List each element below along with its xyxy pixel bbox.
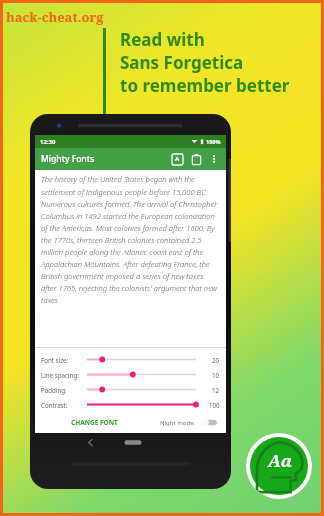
staticText: hack-cheat.org: [6, 8, 104, 26]
staticText: 12: [212, 386, 220, 394]
staticText: Line spacing:: [41, 371, 79, 379]
staticText: 100: [209, 401, 220, 409]
staticText: 100%: [206, 138, 221, 145]
staticText: 10: [212, 371, 220, 379]
staticText: 12:30: [40, 138, 56, 146]
staticText: Aa: [268, 449, 293, 472]
staticText: Read with: [120, 28, 205, 51]
staticText: Night mode:: [160, 419, 196, 427]
staticText: Contrast:: [41, 401, 68, 409]
staticText: to remember better: [120, 74, 290, 97]
staticText: Sans Forgetica: [120, 51, 244, 74]
staticText: Padding:: [41, 386, 67, 394]
staticText: Mighty Fonts: [41, 153, 95, 165]
staticText: 20: [212, 356, 220, 364]
button[interactable]: Night mode:: [160, 415, 220, 430]
button[interactable]: Contrast:: [41, 397, 220, 412]
button[interactable]: CHANGE FONT: [67, 415, 122, 430]
staticText: A: [175, 155, 180, 163]
button[interactable]: More options: [207, 152, 221, 166]
staticText: The history of the United States began w…: [41, 174, 220, 305]
button[interactable]: Font size:: [41, 352, 220, 367]
staticText: CHANGE FONT: [71, 418, 118, 427]
staticText: Font size:: [41, 356, 69, 364]
button[interactable]: Paste from clipboard: [188, 151, 204, 167]
button[interactable]: Line spacing:: [41, 367, 220, 382]
button[interactable]: Change font style: [169, 151, 185, 167]
button[interactable]: Mighty Fonts app icon: [246, 433, 312, 499]
button[interactable]: Padding:: [41, 382, 220, 397]
